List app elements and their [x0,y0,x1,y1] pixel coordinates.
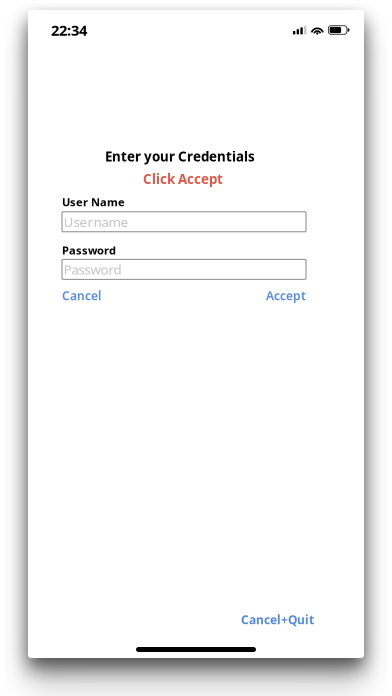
staticText: Cancel [62,288,101,304]
staticText: Password [62,243,116,258]
button[interactable]: Accept [266,288,306,304]
button[interactable]: Cancel+Quit [241,612,314,627]
staticText: Username [64,213,129,231]
staticText: Accept [266,288,306,304]
staticText: Password [64,260,122,278]
staticText: Cancel+Quit [241,612,314,627]
staticText: Enter your Credentials [105,147,255,165]
staticText: Click Accept [143,170,223,188]
staticText: 22:34 [51,20,87,40]
staticText: User Name [62,194,125,209]
button[interactable]: Cancel [62,288,101,304]
